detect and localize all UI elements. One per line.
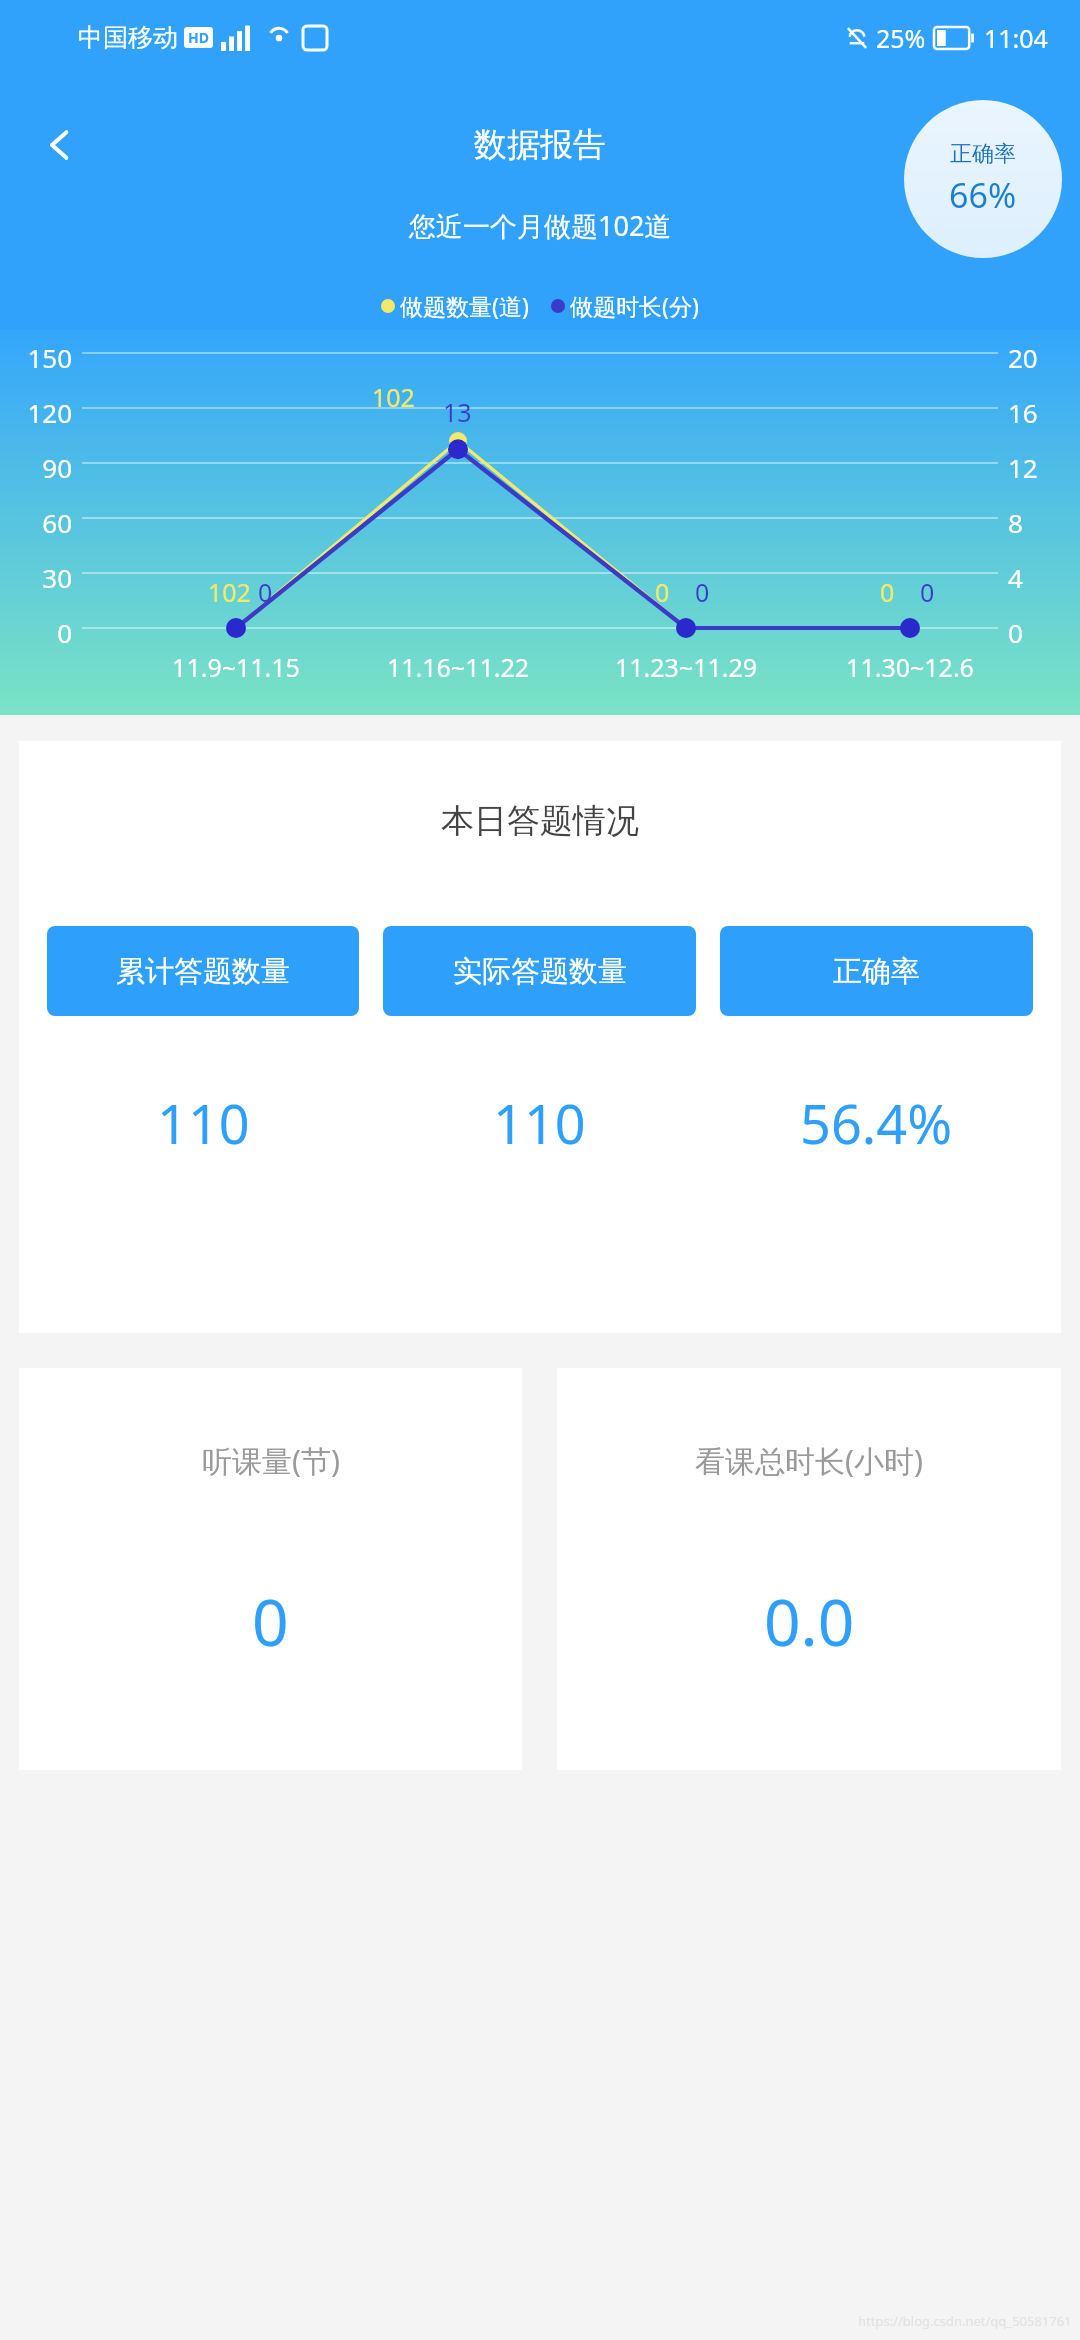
staticText: 0 <box>920 575 935 609</box>
staticText: 20 <box>1008 340 1062 375</box>
staticText: 12 <box>1008 450 1062 485</box>
staticText: 0.0 <box>764 1578 855 1665</box>
staticText: 30 <box>12 560 72 595</box>
staticText: 0 <box>1008 615 1062 650</box>
staticText: 0 <box>880 575 895 609</box>
staticText: 120 <box>12 395 72 430</box>
staticText: 您近一个月做题102道 <box>409 207 672 244</box>
staticText: 110 <box>493 1086 586 1160</box>
staticText: 听课量(节) <box>202 1440 340 1481</box>
button[interactable]: 看课总时长(小时) <box>557 1368 1061 1770</box>
staticText: https://blog.csdn.net/qq_50581761 <box>858 2312 1072 2330</box>
staticText: 本日答题情况 <box>441 800 639 842</box>
staticText: 102 <box>372 380 415 414</box>
staticText: 0 <box>258 575 273 609</box>
button[interactable]: 实际答题数量 <box>383 926 696 1016</box>
staticText: 0 <box>12 615 72 650</box>
staticText: 8 <box>1008 505 1062 540</box>
staticText: 60 <box>12 505 72 540</box>
staticText: 25% <box>876 21 926 55</box>
staticText: 13 <box>443 395 472 429</box>
button[interactable]: 正确率 <box>904 100 1062 258</box>
staticText: 11.9~11.15 <box>126 650 346 684</box>
button[interactable]: Back <box>24 109 96 181</box>
staticText: 正确率 <box>833 953 920 990</box>
staticText: 66% <box>949 172 1017 218</box>
staticText: 做题数量(道) <box>400 290 529 321</box>
staticText: 102 <box>208 575 251 609</box>
staticText: 4 <box>1008 560 1062 595</box>
staticText: 110 <box>157 1086 250 1160</box>
staticText: 累计答题数量 <box>116 953 290 990</box>
staticText: 0 <box>695 575 710 609</box>
button[interactable]: 听课量(节) <box>19 1368 522 1770</box>
staticText: 做题时长(分) <box>570 290 699 321</box>
staticText: 90 <box>12 450 72 485</box>
staticText: 看课总时长(小时) <box>695 1440 923 1481</box>
staticText: 150 <box>12 340 72 375</box>
staticText: HD <box>188 28 209 47</box>
staticText: 11.16~11.22 <box>348 650 568 684</box>
staticText: 正确率 <box>950 140 1016 168</box>
staticText: 0 <box>252 1578 289 1665</box>
staticText: 实际答题数量 <box>453 953 627 990</box>
staticText: 0 <box>655 575 670 609</box>
staticText: 11.23~11.29 <box>576 650 796 684</box>
staticText: 11:04 <box>984 21 1048 55</box>
button[interactable]: 累计答题数量 <box>47 926 359 1016</box>
button[interactable]: 正确率 <box>720 926 1033 1016</box>
staticText: 数据报告 <box>474 124 606 166</box>
staticText: 11.30~12.6 <box>800 650 1020 684</box>
staticText: 56.4% <box>800 1086 953 1160</box>
staticText: 中国移动 <box>78 22 178 53</box>
staticText: 16 <box>1008 395 1062 430</box>
